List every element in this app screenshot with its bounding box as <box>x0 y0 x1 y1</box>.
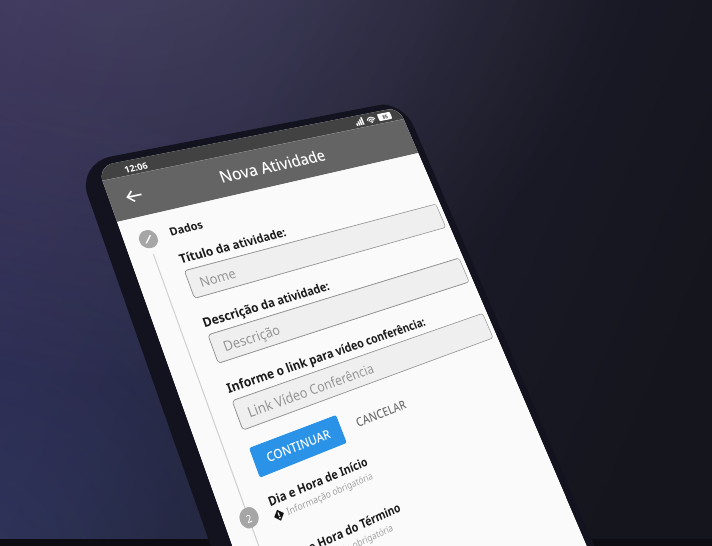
button[interactable]: Link Vídeo Conferência <box>231 313 494 431</box>
staticText: 85 <box>381 113 389 120</box>
button[interactable]: Back <box>114 178 154 214</box>
staticText: Dia e Hora do Término <box>285 498 403 546</box>
button[interactable]: CONTINUAR <box>249 415 347 478</box>
staticText: Descrição da atividade: <box>200 277 332 330</box>
staticText: Informe o link para vídeo conferência: <box>224 313 427 396</box>
staticText: Link Vídeo Conferência <box>244 359 377 422</box>
staticText: 12:06 <box>122 159 150 175</box>
staticText: 2 <box>244 510 255 526</box>
button[interactable]: CANCELAR <box>341 387 420 441</box>
staticText: Descrição <box>220 320 283 355</box>
staticText: Informação obrigatória <box>284 469 375 518</box>
staticText: Nova Atividade <box>216 144 329 187</box>
button[interactable]: Descrição <box>207 257 470 364</box>
staticText: CONTINUAR <box>264 425 333 466</box>
staticText: Dia e Hora de Início <box>265 453 370 509</box>
staticText: Nome <box>196 264 239 291</box>
staticText: Título da atividade: <box>176 224 288 266</box>
staticText: CANCELAR <box>353 396 409 431</box>
staticText: Informação obrigatória <box>305 521 395 546</box>
staticText: Dados <box>167 216 205 239</box>
button[interactable]: Nome <box>184 203 446 299</box>
